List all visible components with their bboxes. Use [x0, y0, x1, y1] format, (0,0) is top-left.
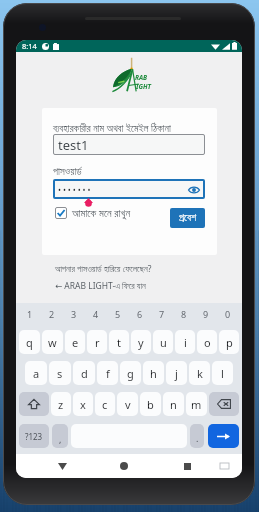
button[interactable]: d	[73, 361, 95, 385]
staticText: ?123	[25, 431, 43, 442]
button[interactable]: .	[190, 424, 204, 448]
staticText: l	[221, 366, 224, 381]
button[interactable]: c	[95, 392, 115, 416]
staticText: 1	[27, 308, 33, 320]
staticText: v	[125, 397, 131, 412]
staticText: আমাকে মনে রাখুন	[72, 206, 131, 220]
staticText: 3	[71, 308, 77, 320]
button[interactable]: 1	[19, 307, 41, 321]
button[interactable]: আমাকে মনে রাখুন	[55, 206, 131, 220]
button[interactable]: x	[73, 392, 93, 416]
staticText: 6	[137, 308, 143, 320]
button[interactable]: t	[109, 330, 129, 354]
staticText: 8	[181, 308, 187, 320]
button[interactable]: i	[175, 330, 195, 354]
button[interactable]: o	[197, 330, 217, 354]
button[interactable]: Enter	[208, 424, 239, 448]
button[interactable]: 5	[107, 307, 129, 321]
button[interactable]: ?123	[19, 424, 49, 448]
staticText: t	[117, 335, 121, 350]
button[interactable]: u	[153, 330, 173, 354]
staticText: d	[81, 366, 88, 381]
staticText: 7	[159, 308, 165, 320]
button[interactable]: 2	[41, 307, 63, 321]
staticText: r	[95, 335, 100, 350]
staticText: পাসওয়ার্ড	[53, 167, 82, 177]
button[interactable]: r	[87, 330, 107, 354]
button[interactable]: 0	[217, 307, 239, 321]
staticText: u	[160, 335, 167, 350]
staticText: g	[127, 366, 134, 381]
button[interactable]: 4	[85, 307, 107, 321]
staticText: •••••••	[58, 184, 93, 195]
button[interactable]: w	[42, 330, 63, 354]
button[interactable]: Back	[51, 455, 73, 477]
button[interactable]: p	[219, 330, 239, 354]
staticText: y	[138, 335, 144, 350]
button[interactable]: j	[166, 361, 187, 385]
staticText: 2	[49, 308, 55, 320]
staticText: 9	[203, 308, 209, 320]
button[interactable]: z	[51, 392, 71, 416]
other: Show password	[188, 186, 200, 194]
staticText: b	[147, 397, 154, 412]
staticText: .	[196, 432, 199, 444]
button[interactable]: 9	[195, 307, 217, 321]
button[interactable]: m	[186, 392, 207, 416]
button[interactable]: Change keyboard	[216, 458, 232, 474]
button[interactable]: Delete	[209, 392, 239, 416]
button[interactable]: আপনার পাসওয়ার্ড হারিয়ে ফেলেছেন?	[55, 263, 152, 275]
staticText: x	[80, 397, 86, 412]
button[interactable]: v	[117, 392, 138, 416]
staticText: ,	[59, 433, 62, 445]
button[interactable]: 8	[173, 307, 195, 321]
button[interactable]: g	[120, 361, 141, 385]
staticText: z	[58, 397, 64, 412]
button[interactable]: l	[212, 361, 233, 385]
staticText: w	[48, 335, 57, 350]
staticText: e	[72, 335, 79, 350]
button[interactable]: ← ARAB LIGHT-এ ফিরে যান	[55, 280, 146, 292]
staticText: o	[204, 335, 211, 350]
button[interactable]: s	[49, 361, 71, 385]
button[interactable]: Home	[113, 455, 135, 477]
button[interactable]: 6	[129, 307, 151, 321]
button[interactable]: test1	[53, 134, 205, 155]
button[interactable]: k	[189, 361, 210, 385]
button[interactable]: 7	[151, 307, 173, 321]
button[interactable]: q	[19, 330, 40, 354]
staticText: ব্যবহারকারীর নাম অথবা ইমেইল ঠিকানা	[53, 121, 171, 134]
button[interactable]: n	[163, 392, 184, 416]
staticText: 0	[225, 308, 231, 320]
staticText: 8:14	[22, 41, 37, 51]
other: Shift	[28, 398, 40, 410]
staticText: 4	[93, 308, 99, 320]
staticText: q	[26, 335, 33, 350]
staticText: test1	[58, 136, 89, 154]
button[interactable]: f	[97, 361, 118, 385]
button[interactable]: h	[143, 361, 164, 385]
staticText: n	[170, 397, 177, 412]
staticText: 5	[115, 308, 121, 320]
button[interactable]: b	[140, 392, 161, 416]
staticText: h	[150, 366, 157, 381]
button[interactable]: Shift	[19, 392, 49, 416]
button[interactable]: প্রবেশ	[170, 208, 205, 228]
staticText: IGHT	[136, 82, 151, 91]
button[interactable]: a	[25, 361, 47, 385]
button[interactable]: y	[131, 330, 151, 354]
button[interactable]: e	[65, 330, 85, 354]
staticText: s	[57, 366, 63, 381]
staticText: p	[226, 335, 233, 350]
button[interactable]: Recent apps	[176, 455, 198, 477]
staticText: j	[175, 366, 178, 381]
button[interactable]: •••••••	[53, 179, 205, 199]
button[interactable]: ,	[52, 424, 68, 448]
staticText: a	[33, 366, 40, 381]
other: Delete	[217, 399, 231, 409]
staticText: RAB	[135, 73, 148, 82]
button[interactable]: 3	[63, 307, 85, 321]
staticText: f	[106, 366, 110, 381]
staticText: k	[197, 366, 203, 381]
